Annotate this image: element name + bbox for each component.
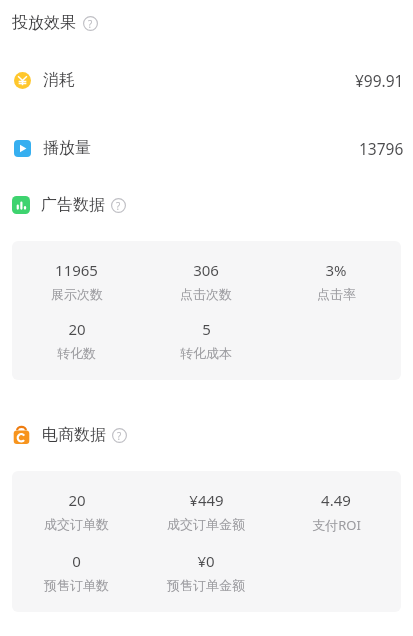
staticText: 点击次数 <box>180 286 232 302</box>
button[interactable]: 消耗 <box>0 46 413 114</box>
staticText: ? <box>88 17 93 30</box>
button[interactable]: 说明 <box>112 428 127 443</box>
staticText: 306 <box>193 260 219 280</box>
button[interactable]: 5 <box>141 319 271 361</box>
staticText: 消耗 <box>43 70 75 90</box>
staticText: 预售订单数 <box>44 577 109 593</box>
staticText: 投放效果 <box>12 13 76 33</box>
staticText: 转化成本 <box>180 345 232 361</box>
staticText: ? <box>117 429 122 442</box>
staticText: 播放量 <box>43 138 91 158</box>
staticText: 预售订单金额 <box>167 577 245 593</box>
button[interactable]: 播放量 <box>0 114 413 182</box>
staticText: 广告数据 <box>41 195 105 215</box>
button[interactable]: ¥449 <box>141 490 271 532</box>
staticText: ¥0 <box>197 551 215 571</box>
staticText: 5 <box>202 319 211 339</box>
button[interactable]: 11965 <box>12 260 141 302</box>
staticText: 成交订单数 <box>44 516 109 532</box>
staticText: ¥449 <box>189 490 224 510</box>
staticText: 点击率 <box>317 286 356 302</box>
staticText: 4.49 <box>321 490 351 510</box>
button[interactable]: 0 <box>12 551 141 593</box>
button[interactable]: 20 <box>12 490 141 532</box>
staticText: 转化数 <box>57 345 96 361</box>
staticText: 11965 <box>55 260 98 280</box>
button[interactable]: 说明 <box>83 16 98 31</box>
staticText: 0 <box>72 551 81 571</box>
button[interactable]: 4.49 <box>271 490 401 534</box>
staticText: 展示次数 <box>51 286 103 302</box>
button[interactable]: 说明 <box>111 198 126 213</box>
staticText: 13796 <box>359 138 404 159</box>
staticText: 3% <box>325 260 347 280</box>
button[interactable]: 20 <box>12 319 141 361</box>
staticText: ? <box>116 199 121 212</box>
staticText: 电商数据 <box>42 425 106 445</box>
staticText: 20 <box>68 319 86 339</box>
staticText: 20 <box>68 490 86 510</box>
button[interactable]: 3% <box>271 260 401 302</box>
button[interactable]: ¥0 <box>141 551 271 593</box>
staticText: ¥99.91 <box>355 70 404 91</box>
staticText: 支付ROI <box>312 516 361 534</box>
staticText: 成交订单金额 <box>167 516 245 532</box>
button[interactable]: 306 <box>141 260 271 302</box>
